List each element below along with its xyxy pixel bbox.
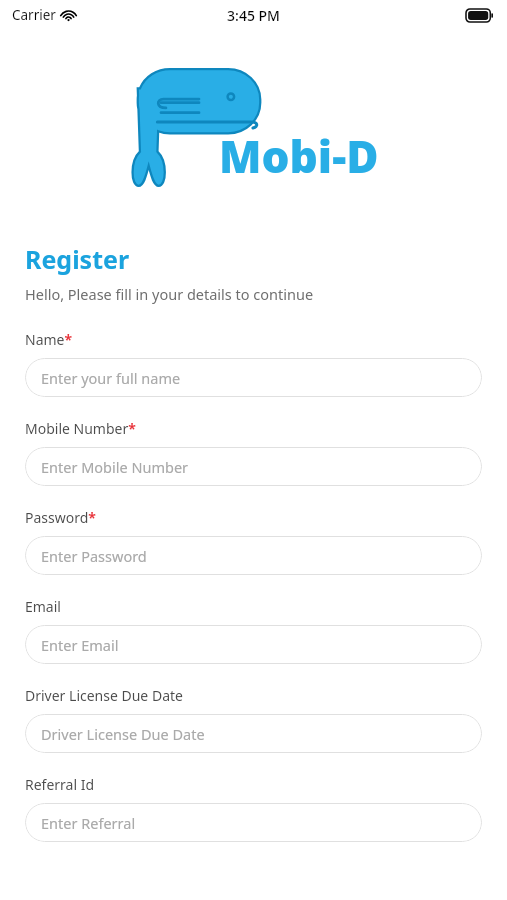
button[interactable]: Driver License Due Date: [25, 714, 482, 753]
staticText: Enter Referral: [41, 813, 136, 833]
staticText: Name*: [25, 330, 73, 349]
staticText: Enter Password: [41, 546, 147, 566]
staticText: Password*: [25, 508, 96, 527]
staticText: Register: [25, 242, 130, 276]
button[interactable]: Enter Referral: [25, 803, 482, 842]
staticText: Email: [25, 597, 61, 616]
staticText: Enter Email: [41, 635, 119, 655]
staticText: Carrier: [12, 6, 56, 24]
staticText: Referral Id: [25, 775, 95, 794]
staticText: Enter your full name: [41, 368, 181, 388]
staticText: Hello, Please fill in your details to co…: [25, 284, 314, 304]
staticText: Enter Mobile Number: [41, 457, 189, 477]
button[interactable]: Enter Password: [25, 536, 482, 575]
staticText: Driver License Due Date: [25, 686, 183, 705]
staticText: Mobile Number*: [25, 419, 136, 438]
button[interactable]: Enter Mobile Number: [25, 447, 482, 486]
staticText: Driver License Due Date: [41, 724, 205, 744]
staticText: 3:45 PM: [227, 6, 280, 25]
staticText: Mobi-D: [219, 126, 379, 186]
button[interactable]: Enter Email: [25, 625, 482, 664]
button[interactable]: Enter your full name: [25, 358, 482, 397]
